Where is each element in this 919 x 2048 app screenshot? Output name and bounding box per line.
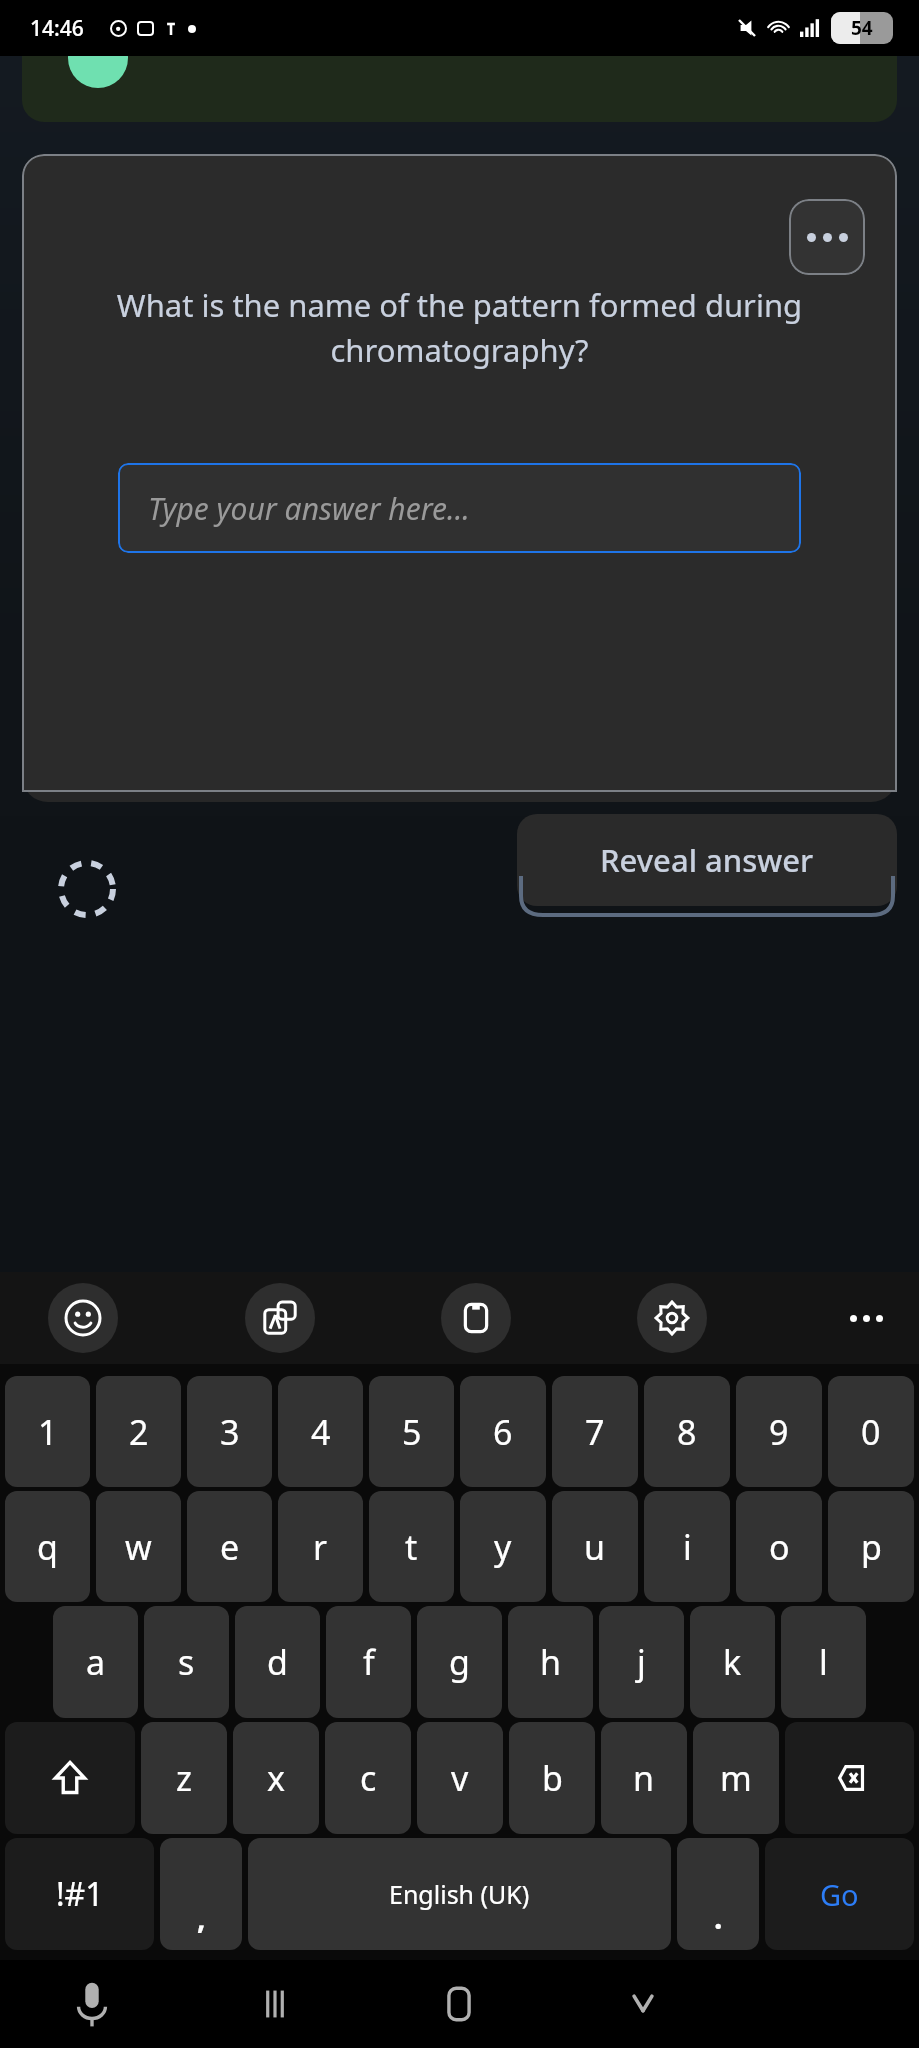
staticText: 9 (769, 1409, 789, 1455)
button[interactable]: 9 (736, 1376, 822, 1487)
staticText: a (86, 1639, 106, 1685)
staticText: 8 (677, 1409, 697, 1455)
button[interactable]: 2 (96, 1376, 181, 1487)
staticText: English (UK) (389, 1877, 530, 1911)
button[interactable]: g (417, 1606, 502, 1718)
button[interactable]: Type your answer here... (118, 463, 801, 553)
button[interactable]: j (599, 1606, 684, 1718)
staticText: i (683, 1524, 692, 1570)
staticText: q (37, 1524, 58, 1570)
button[interactable]: . (677, 1838, 759, 1950)
staticText: v (451, 1755, 469, 1801)
button[interactable]: Hide keyboard (551, 1960, 735, 2048)
button[interactable]: v (417, 1722, 503, 1834)
staticText: m (720, 1755, 752, 1801)
staticText: !#1 (56, 1872, 104, 1916)
staticText: t (405, 1524, 418, 1570)
staticText: 14:46 (30, 14, 84, 43)
button[interactable]: t (369, 1491, 454, 1602)
button[interactable]: 8 (644, 1376, 730, 1487)
button[interactable]: 0 (828, 1376, 914, 1487)
button[interactable]: Reveal answer (517, 814, 897, 906)
button[interactable]: Shift (5, 1722, 135, 1834)
staticText: Go (820, 1875, 859, 1914)
staticText: b (542, 1755, 563, 1801)
staticText: Type your answer here... (148, 488, 471, 529)
staticText: c (360, 1755, 377, 1801)
button[interactable]: Clipboard (441, 1283, 511, 1353)
button[interactable]: y (460, 1491, 546, 1602)
button[interactable]: m (693, 1722, 779, 1834)
staticText: o (769, 1524, 790, 1570)
button[interactable]: s (144, 1606, 229, 1718)
button[interactable]: 5 (369, 1376, 454, 1487)
staticText: 5 (402, 1409, 422, 1455)
staticText: r (313, 1524, 328, 1570)
button[interactable]: e (187, 1491, 272, 1602)
button[interactable]: Translate (245, 1283, 315, 1353)
button[interactable]: l (781, 1606, 866, 1718)
button[interactable]: i (644, 1491, 730, 1602)
staticText: 4 (311, 1409, 331, 1455)
staticText: , (197, 1897, 206, 1938)
staticText: x (267, 1755, 285, 1801)
button[interactable]: d (235, 1606, 320, 1718)
button[interactable] (22, 56, 897, 122)
button[interactable]: Recents (183, 1960, 367, 2048)
button[interactable]: r (278, 1491, 363, 1602)
staticText: 54 (851, 15, 873, 41)
staticText: p (861, 1524, 882, 1570)
button[interactable]: b (509, 1722, 595, 1834)
button[interactable]: Go (765, 1838, 914, 1950)
button[interactable]: z (141, 1722, 227, 1834)
button[interactable]: Voice input (0, 1960, 183, 2048)
staticText: 0 (861, 1409, 881, 1455)
button[interactable]: w (96, 1491, 181, 1602)
button[interactable]: 6 (460, 1376, 546, 1487)
other: Progress (58, 860, 116, 918)
staticText: n (633, 1755, 655, 1801)
button[interactable]: Home (367, 1960, 551, 2048)
staticText: u (584, 1524, 606, 1570)
staticText: 1 (38, 1409, 58, 1455)
button[interactable]: Emoji (48, 1283, 118, 1353)
staticText: 2 (129, 1409, 149, 1455)
button[interactable]: a (53, 1606, 138, 1718)
staticText: 6 (493, 1409, 513, 1455)
staticText: d (267, 1639, 288, 1685)
staticText: y (494, 1524, 512, 1570)
button[interactable]: c (325, 1722, 411, 1834)
staticText: k (723, 1639, 742, 1685)
button[interactable]: p (828, 1491, 914, 1602)
staticText: What is the name of the pattern formed d… (70, 284, 849, 371)
staticText: z (176, 1755, 192, 1801)
button[interactable]: 4 (278, 1376, 363, 1487)
staticText: 7 (585, 1409, 605, 1455)
staticText: s (178, 1639, 195, 1685)
button[interactable]: f (326, 1606, 411, 1718)
button[interactable]: x (233, 1722, 319, 1834)
button[interactable]: k (690, 1606, 775, 1718)
button[interactable]: q (5, 1491, 90, 1602)
button[interactable]: n (601, 1722, 687, 1834)
staticText: l (819, 1639, 828, 1685)
button[interactable]: English (UK) (248, 1838, 671, 1950)
button[interactable]: More options (789, 199, 865, 275)
button[interactable]: !#1 (5, 1838, 154, 1950)
button[interactable]: 7 (552, 1376, 638, 1487)
button[interactable]: o (736, 1491, 822, 1602)
staticText: Reveal answer (600, 839, 814, 881)
button[interactable]: 1 (5, 1376, 90, 1487)
button[interactable]: u (552, 1491, 638, 1602)
staticText: e (220, 1524, 240, 1570)
button[interactable]: More (833, 1285, 899, 1351)
staticText: h (540, 1639, 562, 1685)
staticText: f (363, 1639, 375, 1685)
button[interactable]: 3 (187, 1376, 272, 1487)
button[interactable]: Settings (637, 1283, 707, 1353)
staticText: w (125, 1524, 152, 1570)
staticText: j (637, 1639, 646, 1685)
button[interactable]: Backspace (785, 1722, 914, 1834)
button[interactable]: h (508, 1606, 593, 1718)
button[interactable]: , (160, 1838, 242, 1950)
